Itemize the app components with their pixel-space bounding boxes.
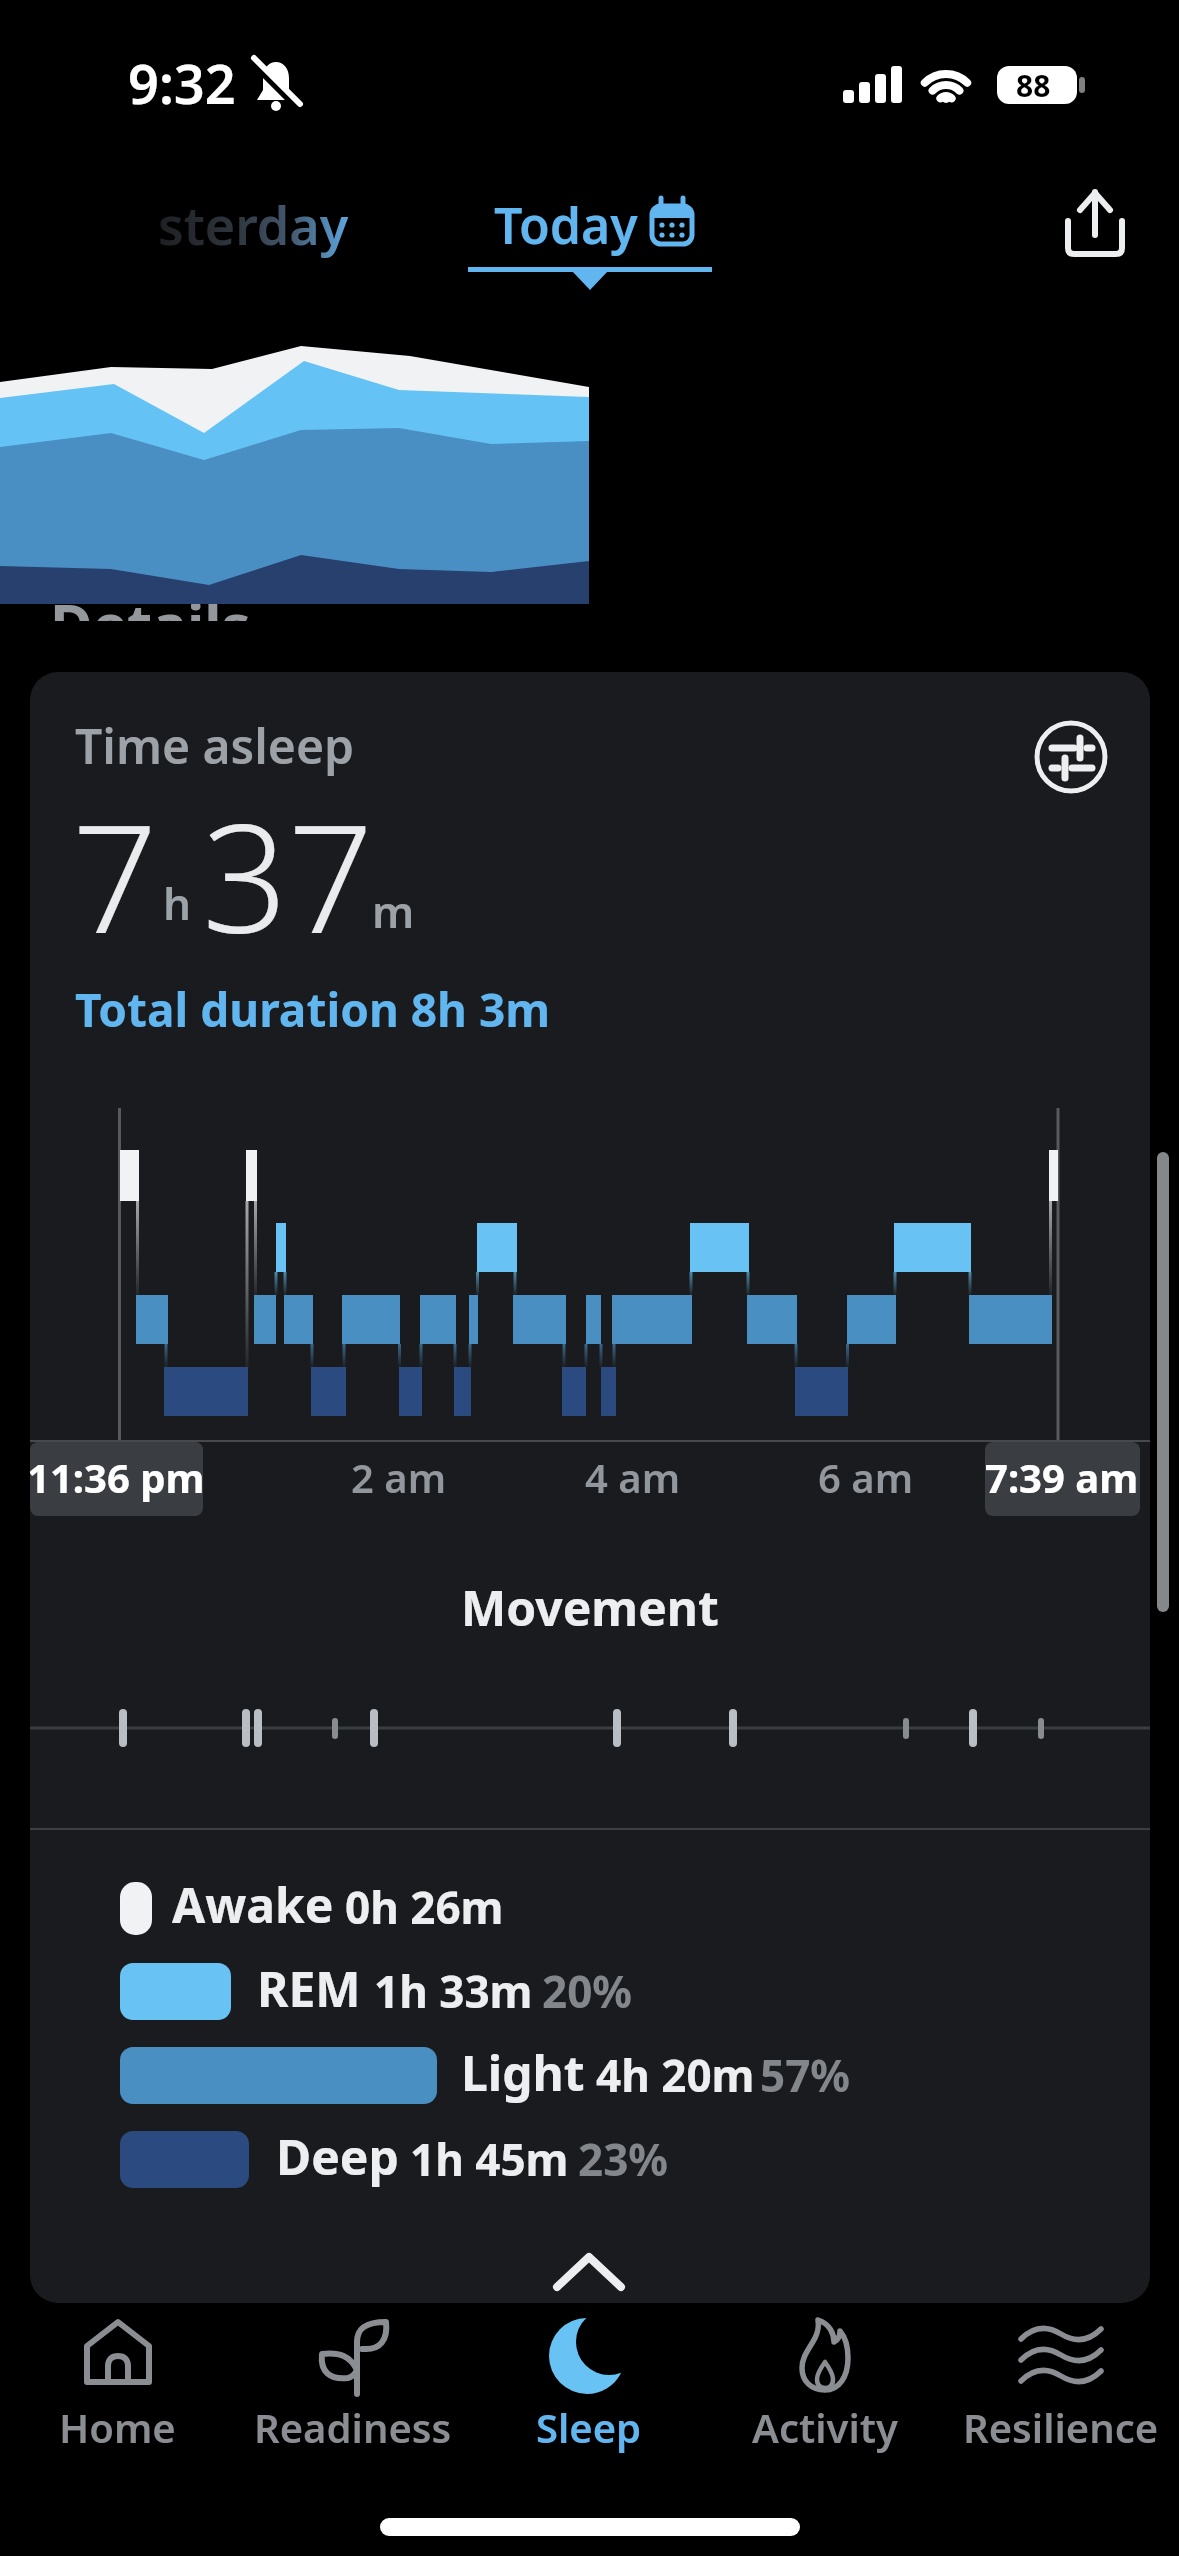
button[interactable]: Sleep (471, 2312, 707, 2472)
staticText: REM (257, 1956, 361, 2021)
staticText: Light (461, 2040, 585, 2105)
staticText: 37 (202, 773, 374, 977)
button[interactable] (529, 2227, 649, 2303)
button[interactable]: Home (0, 2312, 235, 2472)
button[interactable]: Readiness (235, 2312, 471, 2472)
staticText: Deep (276, 2124, 399, 2189)
staticText: 4 am (585, 1450, 681, 1504)
staticText: m (372, 881, 415, 941)
staticText: 6 am (818, 1450, 914, 1504)
button[interactable]: Activity (707, 2312, 943, 2472)
staticText: 23% (578, 2129, 669, 2189)
staticText: Home (59, 2400, 176, 2454)
staticText: 2 am (351, 1450, 447, 1504)
staticText: Resilience (963, 2400, 1159, 2454)
staticText: Today (494, 191, 638, 259)
staticText: 7:39 am (985, 1450, 1139, 1504)
staticText: Details (50, 584, 251, 663)
staticText: Sleep (536, 2400, 642, 2454)
staticText: h (163, 873, 192, 933)
button[interactable]: Resilience (943, 2312, 1179, 2472)
staticText: 57% (760, 2045, 851, 2105)
staticText: 4h 20m (596, 2045, 755, 2105)
button[interactable] (460, 180, 720, 300)
button[interactable] (1034, 720, 1108, 794)
staticText: 11:36 pm (30, 1450, 205, 1504)
staticText: 1h 33m (374, 1961, 533, 2021)
button[interactable] (1050, 180, 1140, 270)
staticText: 88 (1016, 65, 1051, 106)
staticText: sterday (158, 189, 349, 260)
staticText: 1h 45m (410, 2129, 569, 2189)
staticText: 20% (542, 1961, 633, 2021)
staticText: Readiness (254, 2400, 452, 2454)
staticText: Time asleep (75, 713, 355, 778)
staticText: Total duration 8h 3m (75, 978, 551, 1041)
staticText: Awake (172, 1872, 334, 1937)
staticText: 0h 26m (345, 1877, 504, 1937)
staticText: 7 (72, 773, 158, 977)
button[interactable] (130, 180, 350, 270)
staticText: Activity (752, 2400, 898, 2454)
staticText: 9:32 (128, 46, 236, 120)
staticText: Movement (461, 1575, 719, 1640)
